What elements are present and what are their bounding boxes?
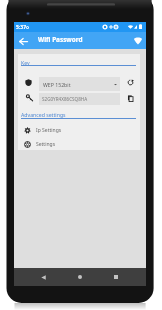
button[interactable]: Navigate up [15,33,31,49]
button[interactable]: Settings [18,138,140,150]
staticText: 5:37 [16,24,26,31]
staticText: Key [21,59,30,66]
staticText: S2G0YR4X86CSQ8HA [42,96,88,102]
button[interactable]: Home [71,268,89,286]
button[interactable]: Back [34,268,52,286]
button[interactable]: Security type [39,77,120,91]
staticText: Advanced settings [21,111,66,118]
staticText: Settings [36,141,56,148]
staticText: Wifi Password [38,35,83,44]
button[interactable]: Refresh [126,78,135,87]
button[interactable]: Wifi [130,33,145,48]
button[interactable]: Recent apps [107,268,125,286]
staticText: Ip Settings [36,127,62,134]
staticText: WEP 152bit [43,81,71,88]
button[interactable]: Copy password [126,94,135,103]
button[interactable]: Ip Settings [18,124,140,136]
